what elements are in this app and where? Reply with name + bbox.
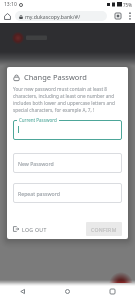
staticText: Your new password must contain at least … <box>13 86 122 114</box>
staticText: my.dukascopy.bank/#/ <box>25 13 81 20</box>
staticText: 75% <box>123 2 132 8</box>
button[interactable]: Home <box>45 283 90 300</box>
staticText: LOG OUT <box>22 226 47 233</box>
button[interactable]: Home <box>0 9 15 23</box>
button[interactable]: More options <box>124 9 135 23</box>
staticText: CONFIRM <box>91 226 117 232</box>
button[interactable]: Back <box>0 283 45 300</box>
button[interactable]: New Password <box>13 153 122 173</box>
button[interactable] <box>13 120 122 140</box>
staticText: Repeat password <box>18 190 60 197</box>
staticText: Change Password <box>24 72 87 82</box>
button[interactable]: LOG OUT <box>13 222 47 236</box>
button[interactable]: Recents <box>90 283 135 300</box>
staticText: 13:10 <box>4 1 17 8</box>
button[interactable]: Repeat password <box>13 183 122 203</box>
button[interactable]: my.dukascopy.bank/#/ <box>15 11 107 21</box>
staticText: New Password <box>18 160 54 167</box>
button[interactable]: CONFIRM <box>86 222 122 236</box>
button[interactable]: Tabs <box>111 9 124 23</box>
staticText: Current Password <box>19 117 57 123</box>
